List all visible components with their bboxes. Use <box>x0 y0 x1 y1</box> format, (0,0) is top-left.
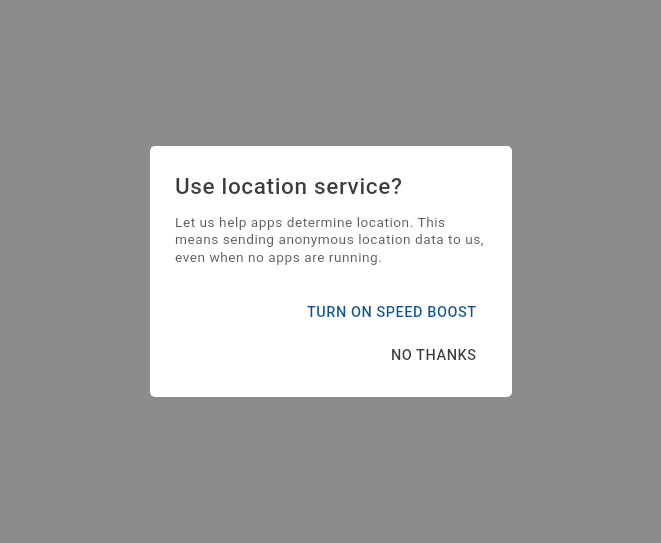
staticText: TURN ON SPEED BOOST <box>307 304 477 321</box>
button[interactable]: NO THANKS <box>381 337 487 374</box>
staticText: Let us help apps determine location. Thi… <box>175 214 485 266</box>
staticText: Use location service? <box>175 173 403 199</box>
button[interactable]: TURN ON SPEED BOOST <box>297 294 487 331</box>
staticText: NO THANKS <box>391 347 477 364</box>
